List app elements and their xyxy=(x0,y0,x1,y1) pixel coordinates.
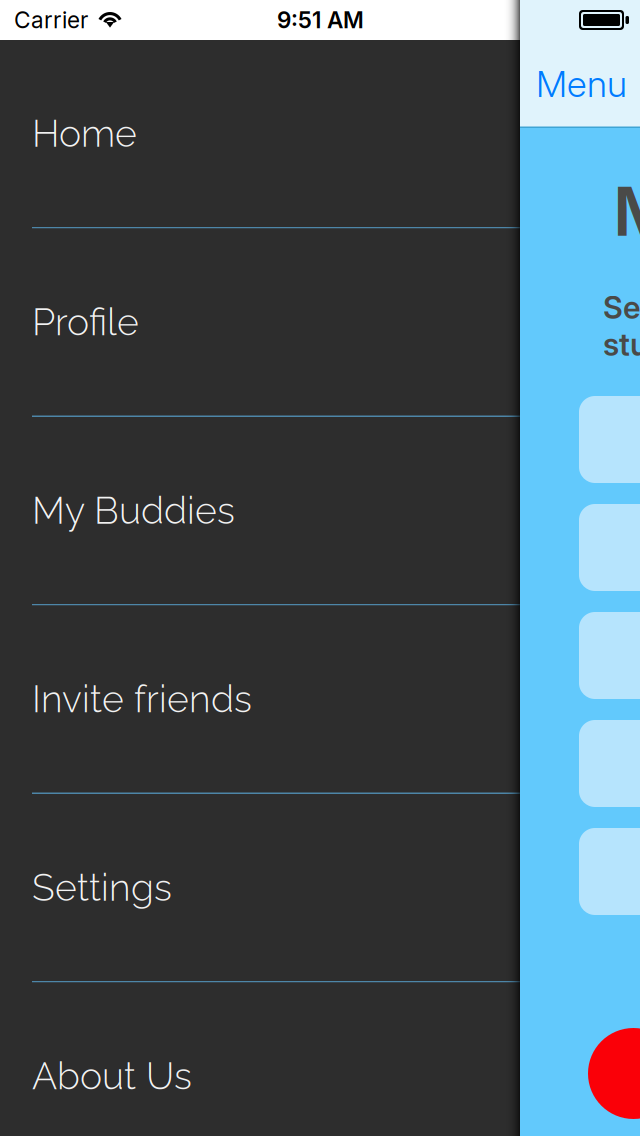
staticText: My Buddies xyxy=(32,489,235,532)
staticText: Menu xyxy=(536,62,627,106)
button[interactable] xyxy=(579,396,640,483)
button[interactable]: Menu xyxy=(520,40,639,128)
staticText: 9:51 AM xyxy=(277,6,364,34)
staticText: Home xyxy=(32,112,137,155)
button[interactable]: My Buddies xyxy=(0,417,520,605)
button[interactable]: Home xyxy=(0,40,520,228)
staticText: Settings xyxy=(32,866,172,909)
button[interactable]: Profile xyxy=(0,228,520,417)
staticText: Profile xyxy=(32,300,139,344)
staticText: My Buddies xyxy=(613,170,640,252)
button[interactable] xyxy=(579,612,640,699)
button[interactable]: Invite friends xyxy=(0,605,520,794)
button[interactable] xyxy=(579,828,640,915)
button[interactable]: Record xyxy=(588,1028,640,1119)
staticText: Select a study buddy xyxy=(603,289,640,363)
staticText: Carrier xyxy=(14,6,88,34)
button[interactable]: Settings xyxy=(0,794,520,982)
staticText: Invite friends xyxy=(32,677,252,721)
button[interactable] xyxy=(579,504,640,591)
button[interactable]: About Us xyxy=(0,982,520,1136)
staticText: About Us xyxy=(32,1054,192,1098)
button[interactable] xyxy=(579,720,640,807)
